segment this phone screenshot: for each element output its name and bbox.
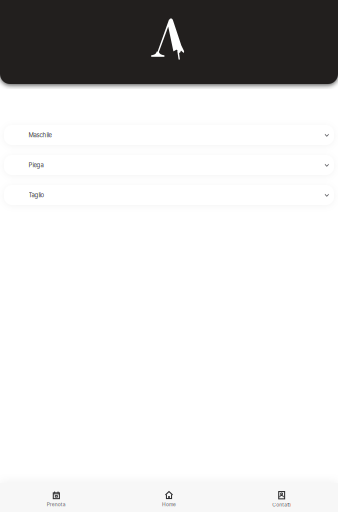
button[interactable]: Maschile xyxy=(4,125,334,145)
staticText: Maschile xyxy=(28,131,51,139)
staticText: Piega xyxy=(28,161,43,169)
button[interactable]: Taglio xyxy=(4,185,334,205)
staticText: Home xyxy=(162,501,176,507)
button[interactable]: Piega xyxy=(4,155,334,175)
staticText: Prenota xyxy=(47,501,66,507)
staticText: Taglio xyxy=(28,191,44,199)
button[interactable]: Prenota xyxy=(0,483,113,512)
staticText: Contatti xyxy=(272,502,291,508)
button[interactable]: Contatti xyxy=(225,483,338,512)
button[interactable]: Home xyxy=(113,483,225,512)
